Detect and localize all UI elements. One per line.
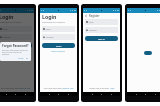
button[interactable]: Back — [84, 14, 88, 18]
staticText: CANCEL — [18, 57, 24, 59]
button[interactable]: Email — [86, 19, 117, 25]
staticText: LOGIN — [56, 45, 62, 47]
button[interactable]: Password — [86, 27, 117, 33]
staticText: Don't have an account? — [44, 87, 63, 89]
button[interactable]: Email — [43, 26, 74, 32]
button[interactable]: Already have an account? — [83, 87, 120, 89]
staticText: Login — [0, 13, 14, 20]
button[interactable]: SIGN UP — [85, 36, 118, 41]
staticText: Register — [89, 14, 100, 18]
button[interactable] — [144, 51, 152, 55]
staticText: LOGIN — [13, 45, 19, 47]
staticText: Email — [3, 28, 8, 30]
staticText: Don't have an account? — [1, 87, 20, 89]
staticText: Password — [46, 36, 54, 38]
staticText: Forgot Password? — [2, 44, 29, 48]
staticText: Login — [110, 87, 115, 89]
button[interactable]: Password — [43, 34, 74, 40]
button[interactable]: Forgot password? — [0, 50, 34, 52]
staticText: Login — [42, 13, 57, 20]
button[interactable]: Forgot password? — [40, 50, 77, 52]
button[interactable]: Email — [0, 26, 31, 32]
button[interactable]: LOGIN — [0, 43, 32, 48]
button[interactable]: Don't have an account? — [40, 87, 77, 89]
staticText: Password — [3, 36, 11, 38]
button[interactable]: Password — [0, 34, 31, 40]
staticText: OK — [26, 57, 29, 59]
staticText: Please sign in to continue — [0, 21, 22, 24]
staticText: Password — [89, 29, 97, 31]
staticText: Register now — [20, 87, 31, 89]
staticText: Register now — [63, 87, 74, 89]
staticText: Please sign in to continue — [42, 21, 65, 24]
button[interactable]: LOGIN — [42, 43, 75, 48]
staticText: Enter your email address and we will sen… — [2, 49, 29, 55]
staticText: Email — [46, 28, 51, 30]
staticText: Email — [89, 21, 94, 23]
staticText: Forgot password? — [8, 50, 23, 52]
staticText: Already have an account? — [89, 87, 110, 89]
staticText: SIGN UP — [98, 38, 105, 40]
staticText: Forgot password? — [51, 50, 66, 52]
button[interactable]: Don't have an account? — [0, 87, 34, 89]
